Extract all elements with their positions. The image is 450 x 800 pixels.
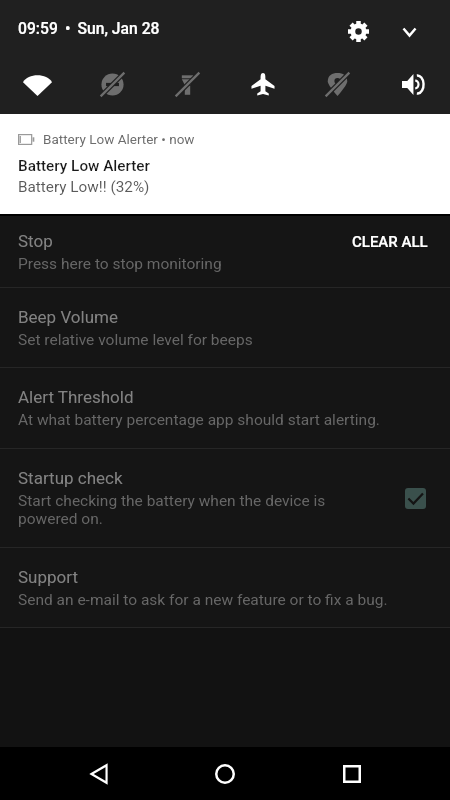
staticText: Start checking the battery when the devi…	[18, 492, 326, 528]
staticText: Startup check	[18, 468, 123, 488]
button[interactable]: Location	[300, 55, 375, 113]
staticText: Battery Low Alerter • now	[43, 131, 195, 147]
button[interactable]: Recent apps	[324, 747, 380, 800]
staticText: Support	[18, 567, 78, 587]
staticText: Set relative volume level for beeps	[18, 331, 253, 349]
button[interactable]: Alert Threshold	[0, 368, 450, 448]
button[interactable]: Flashlight	[150, 55, 225, 113]
button[interactable]: Do not disturb	[75, 55, 150, 113]
button[interactable]: Wi-Fi	[0, 55, 75, 113]
button[interactable]: CLEAR ALL	[341, 228, 439, 256]
staticText: Press here to stop monitoring	[18, 255, 222, 273]
button[interactable]: Settings	[336, 9, 380, 53]
staticText: At what battery percentage app should st…	[18, 411, 380, 429]
button[interactable]: Beep Volume	[0, 288, 450, 367]
staticText: Send an e-mail to ask for a new feature …	[18, 591, 388, 609]
button[interactable]: Stop	[0, 216, 450, 287]
button[interactable]: Startup check	[0, 449, 450, 547]
staticText: Beep Volume	[18, 307, 118, 327]
staticText: Battery Low!! (32%)	[18, 178, 150, 196]
button[interactable]: Airplane mode	[225, 55, 300, 113]
button[interactable]: Home	[197, 747, 253, 800]
button[interactable]: Back	[71, 747, 127, 800]
button[interactable]: Sound	[375, 55, 450, 113]
staticText: Stop	[18, 231, 53, 251]
staticText: 09:59 • Sun, Jan 28	[18, 19, 160, 37]
staticText: Battery Low Alerter	[18, 157, 150, 175]
button[interactable]: Support	[0, 548, 450, 627]
staticText: CLEAR ALL	[352, 233, 428, 251]
staticText: Alert Threshold	[18, 387, 134, 407]
button[interactable]: Collapse	[387, 10, 431, 54]
